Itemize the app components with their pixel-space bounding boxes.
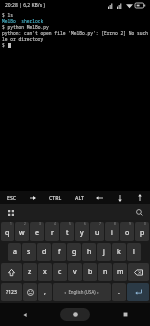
staticText: t xyxy=(66,228,69,238)
button[interactable]: 5 xyxy=(60,222,74,241)
button[interactable]: Recents xyxy=(100,303,150,326)
button[interactable]: k xyxy=(112,243,126,261)
button[interactable]: n xyxy=(98,263,112,281)
staticText: g xyxy=(72,247,77,257)
button[interactable]: v xyxy=(68,263,82,281)
staticText: c xyxy=(58,267,62,277)
button[interactable]: Back xyxy=(0,303,50,326)
staticText: n xyxy=(103,267,108,277)
button[interactable]: 6 xyxy=(75,222,89,241)
staticText: a xyxy=(13,247,17,257)
button[interactable]: h xyxy=(82,243,96,261)
button[interactable]: 2 xyxy=(15,222,29,241)
button[interactable]: 0 xyxy=(135,222,149,241)
staticText: 9 xyxy=(129,222,131,226)
button[interactable]: m xyxy=(113,263,127,281)
button[interactable]: x xyxy=(38,263,52,281)
staticText: python: can't open file 'MelBo.py': [Err… xyxy=(2,30,150,36)
button[interactable]: Enter xyxy=(127,283,149,301)
staticText: k xyxy=(117,247,121,257)
staticText: ◂ xyxy=(64,290,67,295)
staticText: $ ls xyxy=(2,12,14,18)
button[interactable]: ALT xyxy=(68,191,90,204)
staticText: $ python MelBo.py xyxy=(2,24,49,30)
staticText: i xyxy=(111,228,113,238)
button[interactable]: l xyxy=(127,243,141,261)
button[interactable]: 7 xyxy=(90,222,104,241)
button[interactable]: Home xyxy=(50,303,100,326)
staticText: e xyxy=(35,228,39,238)
button[interactable]: d xyxy=(37,243,51,261)
staticText: 1 xyxy=(10,222,12,226)
button[interactable]: Left xyxy=(90,191,110,204)
staticText: h xyxy=(87,247,92,257)
button[interactable]: $ ls xyxy=(0,11,150,191)
staticText: w xyxy=(19,228,25,238)
staticText: 3 xyxy=(39,222,41,226)
button[interactable]: Backspace xyxy=(128,263,149,281)
staticText: $ xyxy=(2,42,8,48)
staticText: j xyxy=(103,247,105,257)
button[interactable]: f xyxy=(52,243,66,261)
button[interactable]: Keyboard options xyxy=(5,207,16,218)
staticText: ALT xyxy=(75,194,84,201)
button[interactable]: , xyxy=(38,283,52,301)
button[interactable]: Up xyxy=(130,191,150,204)
staticText: ▸ xyxy=(97,290,100,295)
staticText: q xyxy=(5,228,10,238)
staticText: 0 xyxy=(144,222,146,226)
button[interactable]: Search xyxy=(134,207,145,218)
button[interactable]: ◂ xyxy=(53,283,111,301)
button[interactable]: 1 xyxy=(1,222,14,241)
staticText: b xyxy=(88,267,93,277)
button[interactable]: 4 xyxy=(45,222,59,241)
button[interactable]: 9 xyxy=(120,222,134,241)
staticText: 2 xyxy=(24,222,26,226)
button[interactable]: Shift xyxy=(1,263,22,281)
button[interactable]: b xyxy=(83,263,97,281)
button[interactable]: ?123 xyxy=(1,283,22,301)
staticText: 4 xyxy=(54,222,56,226)
staticText: z xyxy=(28,267,32,277)
button[interactable]: Tab xyxy=(23,191,43,204)
staticText: 8 xyxy=(114,222,116,226)
staticText: d xyxy=(42,247,47,257)
button[interactable]: Emoji xyxy=(23,283,37,301)
button[interactable]: s xyxy=(22,243,36,261)
button[interactable]: . xyxy=(112,283,126,301)
staticText: p xyxy=(140,228,145,238)
staticText: r xyxy=(51,228,54,238)
staticText: , xyxy=(44,287,46,297)
staticText: m xyxy=(117,267,124,277)
button[interactable]: a xyxy=(8,243,21,261)
button[interactable]: 8 xyxy=(105,222,119,241)
button[interactable]: 3 xyxy=(30,222,44,241)
staticText: l xyxy=(133,247,135,257)
staticText: 5 xyxy=(69,222,71,226)
staticText: y xyxy=(80,228,84,238)
staticText: 7 xyxy=(99,222,101,226)
staticText: 20:28 | 6,2 KB/s ) xyxy=(5,2,45,9)
staticText: s xyxy=(27,247,31,257)
staticText: v xyxy=(73,267,77,277)
button[interactable]: g xyxy=(67,243,81,261)
button[interactable]: CTRL xyxy=(43,191,68,204)
staticText: le or directory xyxy=(2,36,44,42)
button[interactable]: z xyxy=(23,263,37,281)
button[interactable]: ESC xyxy=(0,191,23,204)
button[interactable]: j xyxy=(97,243,111,261)
staticText: x xyxy=(43,267,47,277)
staticText: 6 xyxy=(84,222,86,226)
staticText: MelBo sherlock xyxy=(2,18,44,24)
staticText: English (USA) xyxy=(68,289,96,295)
staticText: CTRL xyxy=(49,194,62,201)
staticText: . xyxy=(118,287,120,297)
staticText: ?123 xyxy=(6,289,17,296)
staticText: f xyxy=(58,247,61,257)
staticText: u xyxy=(95,228,100,238)
button[interactable]: Down xyxy=(110,191,130,204)
button[interactable]: c xyxy=(53,263,67,281)
staticText: ESC xyxy=(7,194,17,201)
staticText: o xyxy=(125,228,130,238)
